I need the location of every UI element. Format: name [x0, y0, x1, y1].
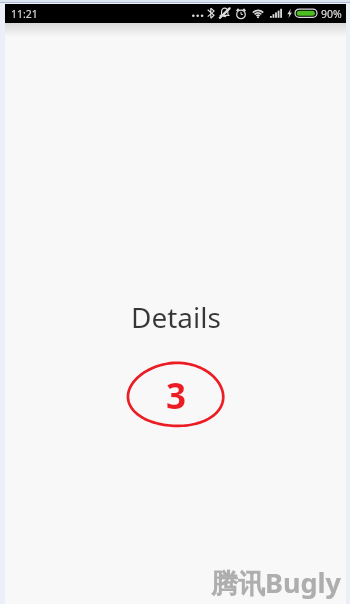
staticText: 3: [166, 372, 187, 420]
staticText: 90%: [321, 7, 342, 21]
staticText: 腾讯Bugly: [211, 564, 342, 601]
staticText: 11:21: [11, 7, 38, 21]
staticText: Details: [131, 298, 221, 336]
button[interactable]: 3: [126, 360, 226, 430]
